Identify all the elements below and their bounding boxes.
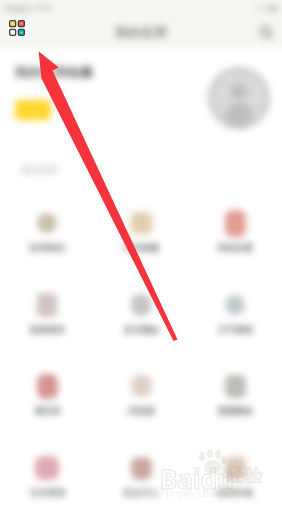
button[interactable]: 音乐播放 xyxy=(107,290,175,340)
button[interactable]: Profile xyxy=(207,66,271,130)
button[interactable]: 系统设置 xyxy=(201,208,269,258)
staticText: 我的应用收藏 xyxy=(15,64,93,80)
staticText: 浏览器 xyxy=(128,405,155,416)
staticText: 通讯录 xyxy=(34,405,61,416)
button[interactable]: 应用市场 xyxy=(201,453,269,503)
button[interactable]: 相册图库 xyxy=(13,290,81,340)
staticText: 天气预报 xyxy=(217,324,253,335)
staticText: 音乐播放 xyxy=(123,324,159,335)
button[interactable]: 浏览器 xyxy=(107,371,175,421)
staticText: 我的应用 xyxy=(115,24,167,40)
staticText: 应用商店 xyxy=(29,242,65,253)
staticText: Baidu xyxy=(160,461,234,496)
button[interactable]: 天气预报 xyxy=(201,290,269,340)
staticText: 中国移动 xyxy=(3,4,31,13)
button[interactable]: 安全中心 xyxy=(107,453,175,503)
staticText: 10:24 xyxy=(33,3,51,13)
staticText: 最近使用 xyxy=(22,164,58,175)
button[interactable]: 视频播放 xyxy=(201,371,269,421)
staticText: 文件管理 xyxy=(29,487,65,498)
staticText: 相册图库 xyxy=(29,324,65,335)
staticText: 系统设置 xyxy=(217,242,253,253)
button[interactable] xyxy=(15,100,51,120)
button[interactable]: Apps menu xyxy=(8,23,26,41)
button[interactable]: Search xyxy=(259,25,274,40)
button[interactable]: 通讯录 xyxy=(13,371,81,421)
button[interactable]: 应用商店 xyxy=(13,208,81,258)
button[interactable]: 日历提醒 xyxy=(107,208,175,258)
staticText: 经验 xyxy=(225,464,263,488)
staticText: 安全中心 xyxy=(123,487,159,498)
staticText: jingyan.baidu.com xyxy=(166,486,253,500)
staticText: 视频播放 xyxy=(217,405,253,416)
staticText: 日历提醒 xyxy=(123,242,159,253)
staticText: 应用市场 xyxy=(217,487,253,498)
button[interactable]: 文件管理 xyxy=(13,453,81,503)
